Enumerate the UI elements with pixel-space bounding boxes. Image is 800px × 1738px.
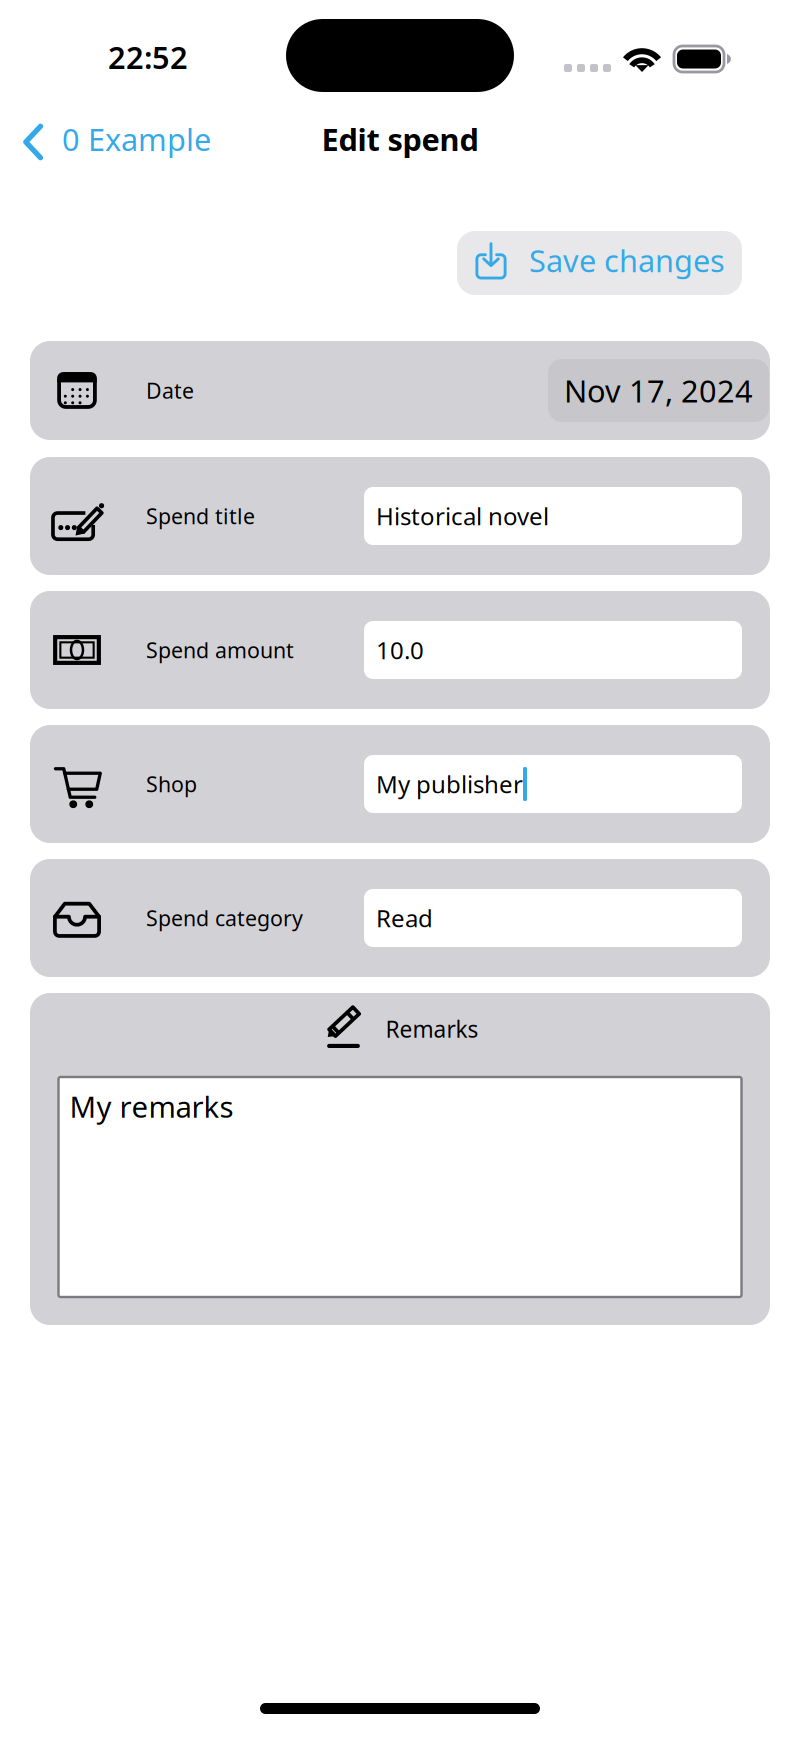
button[interactable]: Save changes	[457, 231, 742, 295]
staticText: Read	[376, 902, 433, 934]
button[interactable]: Read	[364, 889, 742, 947]
button[interactable]: Nov 17, 2024	[548, 359, 769, 422]
staticText: Nov 17, 2024	[564, 370, 753, 411]
staticText: Spend category	[146, 904, 303, 932]
staticText: Historical novel	[376, 500, 549, 532]
button[interactable]: My remarks	[58, 1077, 741, 1297]
staticText: 10.0	[376, 634, 424, 666]
staticText: My publisher	[376, 768, 523, 800]
button[interactable]: Historical novel	[364, 487, 742, 545]
staticText: Shop	[146, 770, 197, 798]
staticText: 0 Example	[62, 119, 211, 159]
staticText: Date	[146, 376, 194, 405]
staticText: 22:52	[108, 37, 188, 77]
staticText: Spend title	[146, 502, 255, 530]
button[interactable]: 0 Example	[0, 106, 227, 172]
staticText: Spend amount	[146, 636, 294, 664]
staticText: Edit spend	[321, 119, 478, 159]
staticText: My remarks	[69, 1087, 233, 1126]
staticText: Save changes	[529, 240, 725, 281]
button[interactable]: 10.0	[364, 621, 742, 679]
button[interactable]: My publisher	[364, 755, 742, 813]
staticText: Remarks	[385, 1014, 478, 1044]
